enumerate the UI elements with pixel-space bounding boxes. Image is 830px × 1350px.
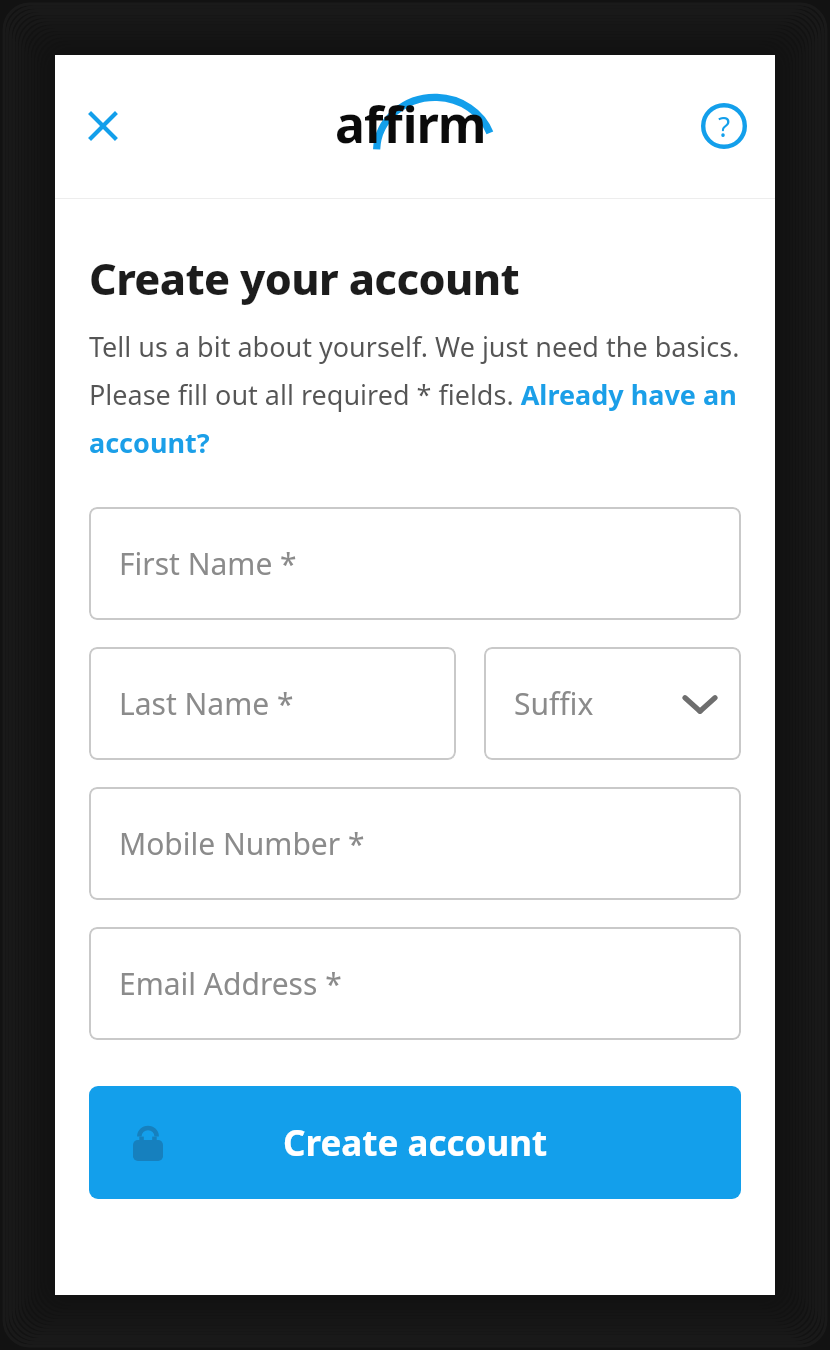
button[interactable]: First Name * xyxy=(89,507,741,620)
button[interactable]: Email Address * xyxy=(89,927,741,1040)
button[interactable]: Suffix xyxy=(484,647,741,760)
staticText: Email Address * xyxy=(119,963,342,1004)
button[interactable]: Last Name * xyxy=(89,647,456,760)
button[interactable]: Tell us a bit about yourself. We just ne… xyxy=(89,328,741,461)
staticText: Create account xyxy=(283,1119,548,1167)
staticText: affirm xyxy=(335,90,486,158)
staticText: Last Name * xyxy=(119,683,294,724)
button[interactable]: Close xyxy=(73,96,133,156)
button[interactable]: Mobile Number * xyxy=(89,787,741,900)
button[interactable]: Create account xyxy=(89,1086,741,1199)
staticText: First Name * xyxy=(119,543,297,584)
staticText: Create your account xyxy=(89,249,519,308)
staticText: Mobile Number * xyxy=(119,823,365,864)
staticText: Suffix xyxy=(514,683,594,724)
staticText: ? xyxy=(718,107,731,145)
button[interactable]: Help xyxy=(693,95,755,157)
